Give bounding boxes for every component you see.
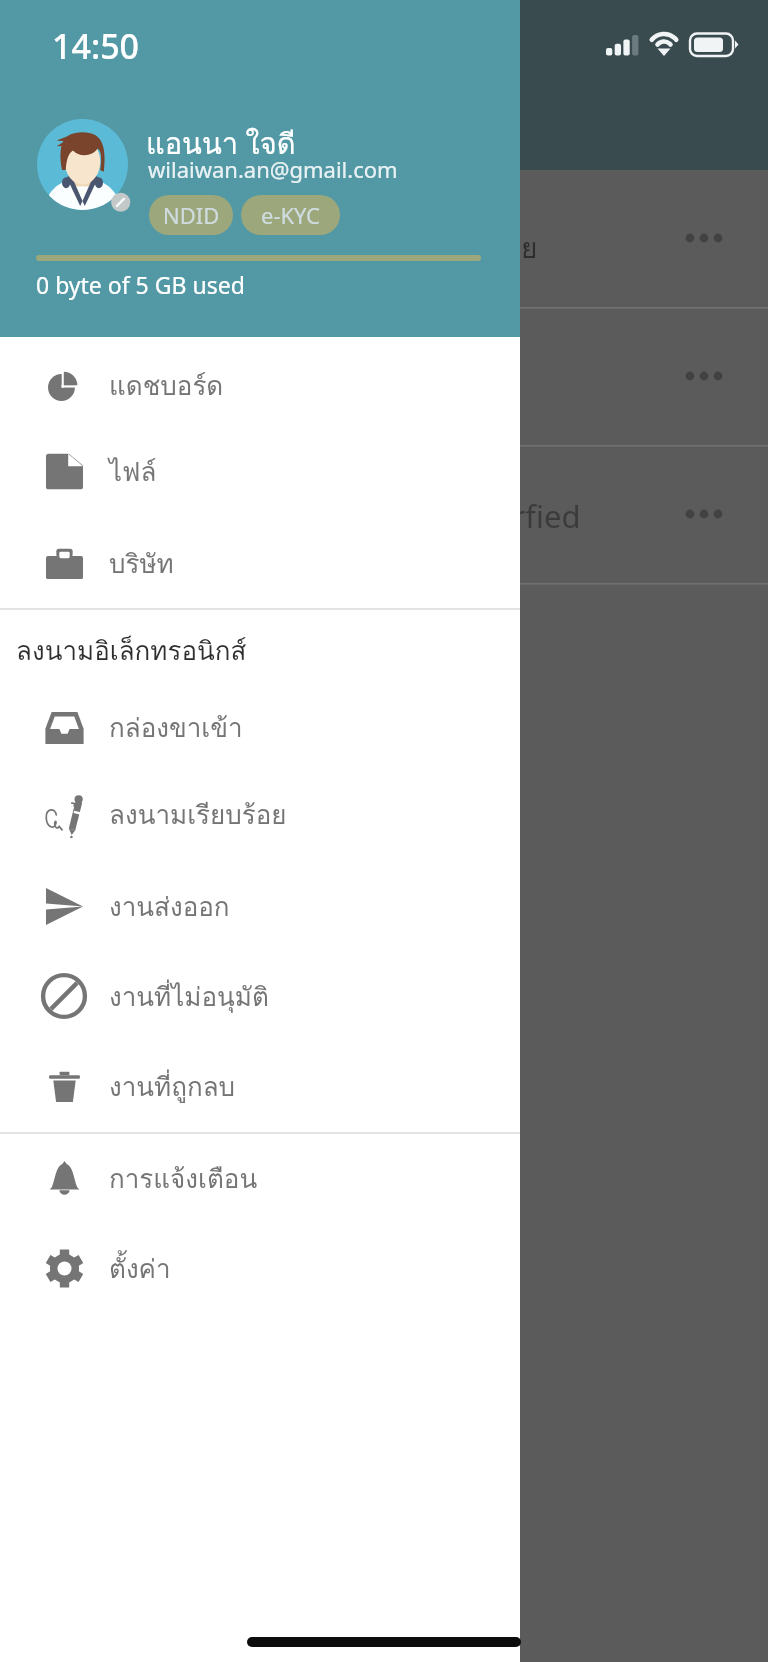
- button[interactable]: More options: [669, 479, 739, 549]
- staticText: ลงนามอิเล็กทรอนิกส์: [16, 630, 247, 671]
- staticText: 14:50: [52, 23, 140, 69]
- button[interactable]: ตั้งค่า: [0, 1223, 520, 1313]
- staticText: บริษัท: [109, 543, 174, 584]
- staticText: ย: [521, 226, 538, 271]
- staticText: Verfied: [477, 495, 581, 537]
- button[interactable]: NDID: [149, 195, 233, 235]
- staticText: 0 byte of 5 GB used: [36, 269, 245, 300]
- staticText: ลงนามเรียบร้อย: [109, 794, 287, 835]
- staticText: งานที่ไม่อนุมัติ: [109, 976, 269, 1017]
- button[interactable]: งานส่งออก: [0, 861, 520, 951]
- staticText: NDID: [163, 200, 220, 230]
- button[interactable]: e-KYC: [241, 195, 340, 235]
- button[interactable]: บริษัท: [0, 518, 520, 608]
- button[interactable]: งานที่ไม่อนุมัติ: [0, 951, 520, 1041]
- button[interactable]: แดชบอร์ด: [0, 340, 520, 430]
- staticText: e-KYC: [261, 200, 321, 230]
- staticText: งานส่งออก: [109, 886, 230, 927]
- staticText: ตั้งค่า: [109, 1248, 171, 1289]
- staticText: แดชบอร์ด: [109, 365, 224, 406]
- button[interactable]: More options: [669, 203, 739, 273]
- button[interactable]: การแจ้งเตือน: [0, 1133, 520, 1223]
- button[interactable]: More options: [669, 341, 739, 411]
- button[interactable]: ไฟล์: [0, 426, 520, 516]
- staticText: งานที่ถูกลบ: [109, 1066, 236, 1107]
- staticText: แอนนา ใจดี: [146, 121, 296, 167]
- button[interactable]: ลงนามเรียบร้อย: [0, 769, 520, 859]
- staticText: wilaiwan.an@gmail.com: [148, 154, 398, 184]
- button[interactable]: งานที่ถูกลบ: [0, 1041, 520, 1131]
- button[interactable]: กล่องขาเข้า: [0, 682, 520, 772]
- staticText: ไฟล์: [109, 451, 157, 492]
- staticText: การแจ้งเตือน: [109, 1158, 258, 1199]
- staticText: กล่องขาเข้า: [109, 707, 243, 748]
